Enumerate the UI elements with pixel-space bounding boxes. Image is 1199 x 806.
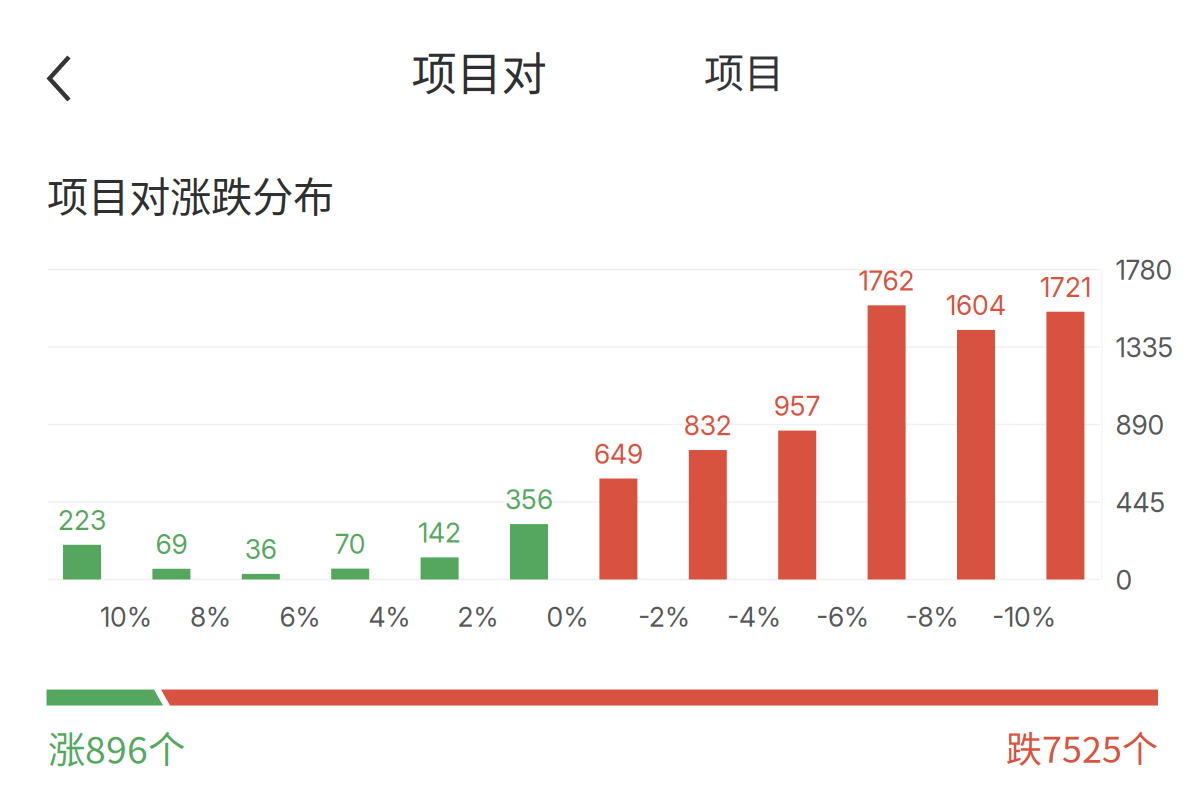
staticText: 项目 (704, 41, 784, 99)
button[interactable]: Back (29, 37, 89, 120)
button[interactable]: 项目 (688, 31, 800, 109)
staticText: 2% (457, 601, 498, 633)
staticText: -6% (816, 601, 869, 633)
staticText: 445 (1115, 486, 1165, 519)
staticText: 649 (594, 438, 643, 470)
staticText: 70 (335, 528, 366, 560)
staticText: 832 (684, 409, 732, 442)
button[interactable]: 项目对 (395, 28, 562, 114)
staticText: -8% (905, 601, 958, 633)
staticText: 890 (1115, 409, 1164, 441)
staticText: 6% (279, 601, 320, 633)
staticText: 1335 (1115, 331, 1173, 364)
staticText: -2% (638, 601, 690, 633)
staticText: -4% (727, 601, 781, 633)
staticText: 10% (100, 601, 152, 633)
staticText: 69 (155, 528, 187, 560)
staticText: 223 (58, 504, 106, 536)
staticText: 项目对 (411, 38, 546, 104)
staticText: 142 (418, 517, 461, 549)
staticText: 36 (245, 533, 277, 566)
staticText: 1780 (1115, 254, 1172, 286)
staticText: 项目对涨跌分布 (47, 164, 334, 224)
staticText: 跌7525个 (1006, 721, 1158, 773)
staticText: 1721 (1040, 271, 1091, 303)
staticText: 356 (505, 483, 553, 516)
staticText: 957 (774, 390, 821, 422)
staticText: 8% (190, 601, 231, 633)
staticText: 4% (368, 601, 410, 633)
staticText: 1604 (946, 289, 1006, 322)
staticText: 涨896个 (48, 720, 185, 775)
staticText: 1762 (859, 265, 915, 297)
staticText: 0 (1115, 564, 1132, 596)
staticText: 0% (546, 601, 588, 633)
staticText: -10% (992, 601, 1056, 633)
